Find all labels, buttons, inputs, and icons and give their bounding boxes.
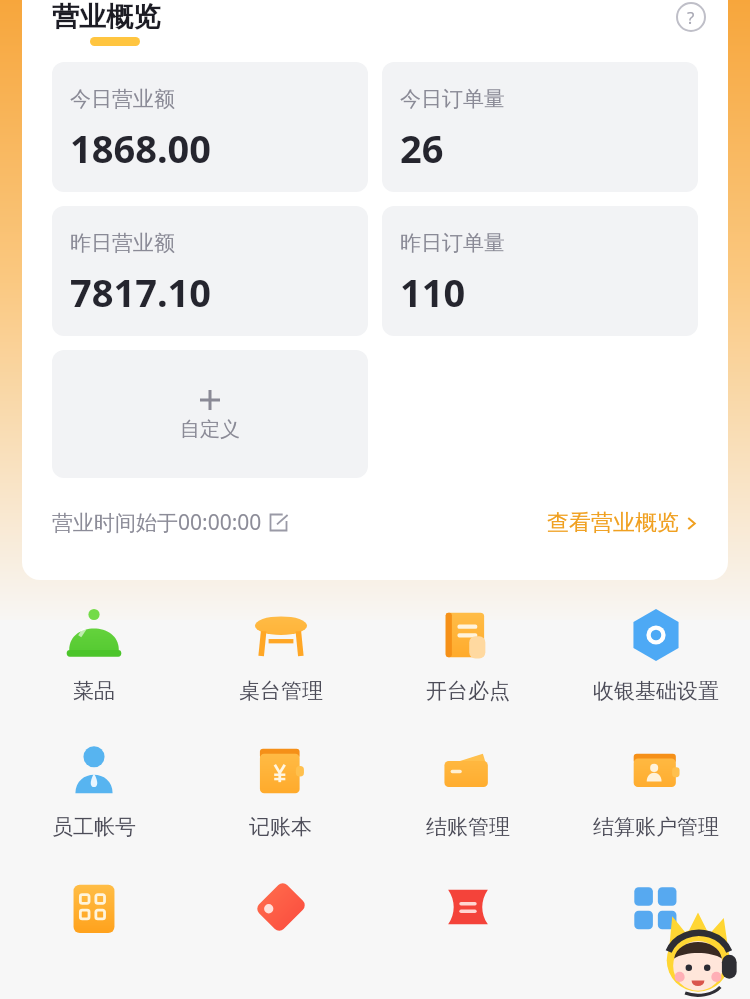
button[interactable]: 今日订单量 [382, 62, 698, 192]
button[interactable]: 结账管理 [374, 736, 562, 844]
button[interactable]: Edit business hours [269, 513, 288, 532]
button[interactable]: QR [0, 872, 187, 942]
staticText: 7817.10 [70, 266, 212, 318]
button[interactable]: 员工帐号 [0, 736, 187, 844]
staticText: 开台必点 [426, 678, 510, 704]
staticText: 昨日订单量 [400, 230, 505, 256]
staticText: 查看营业概览 [547, 509, 679, 537]
staticText: ? [687, 6, 695, 29]
staticText: 菜品 [73, 678, 115, 704]
button[interactable]: BLUEGRID [562, 872, 750, 942]
button[interactable]: 自定义 [52, 350, 368, 478]
staticText: 自定义 [180, 417, 240, 442]
staticText: 营业时间始于00:00:00 [52, 508, 262, 537]
staticText: 26 [400, 122, 444, 174]
staticText: 今日营业额 [70, 86, 175, 112]
staticText: 营业概览 [52, 0, 160, 34]
staticText: 结账管理 [426, 814, 510, 840]
button[interactable]: 桌台管理 [187, 600, 374, 708]
button[interactable]: 开台必点 [374, 600, 562, 708]
button[interactable]: 查看营业概览 [547, 509, 698, 537]
button[interactable]: COUPON [374, 872, 562, 942]
staticText: 结算账户管理 [593, 814, 719, 840]
staticText: 1868.00 [70, 122, 212, 174]
staticText: 记账本 [249, 814, 312, 840]
button[interactable]: 结算账户管理 [562, 736, 750, 844]
staticText: 今日订单量 [400, 86, 505, 112]
button[interactable]: 记账本 [187, 736, 374, 844]
button[interactable]: Help [676, 2, 706, 32]
button[interactable]: 菜品 [0, 600, 187, 708]
button[interactable]: 今日营业额 [52, 62, 368, 192]
staticText: 110 [400, 266, 466, 318]
button[interactable]: 昨日订单量 [382, 206, 698, 336]
staticText: 昨日营业额 [70, 230, 175, 256]
staticText: 收银基础设置 [593, 678, 719, 704]
staticText: 桌台管理 [239, 678, 323, 704]
button[interactable]: 收银基础设置 [562, 600, 750, 708]
staticText: 员工帐号 [52, 814, 136, 840]
button[interactable]: Customer service assistant [652, 907, 744, 999]
button[interactable]: TAG [187, 872, 374, 942]
button[interactable]: 昨日营业额 [52, 206, 368, 336]
